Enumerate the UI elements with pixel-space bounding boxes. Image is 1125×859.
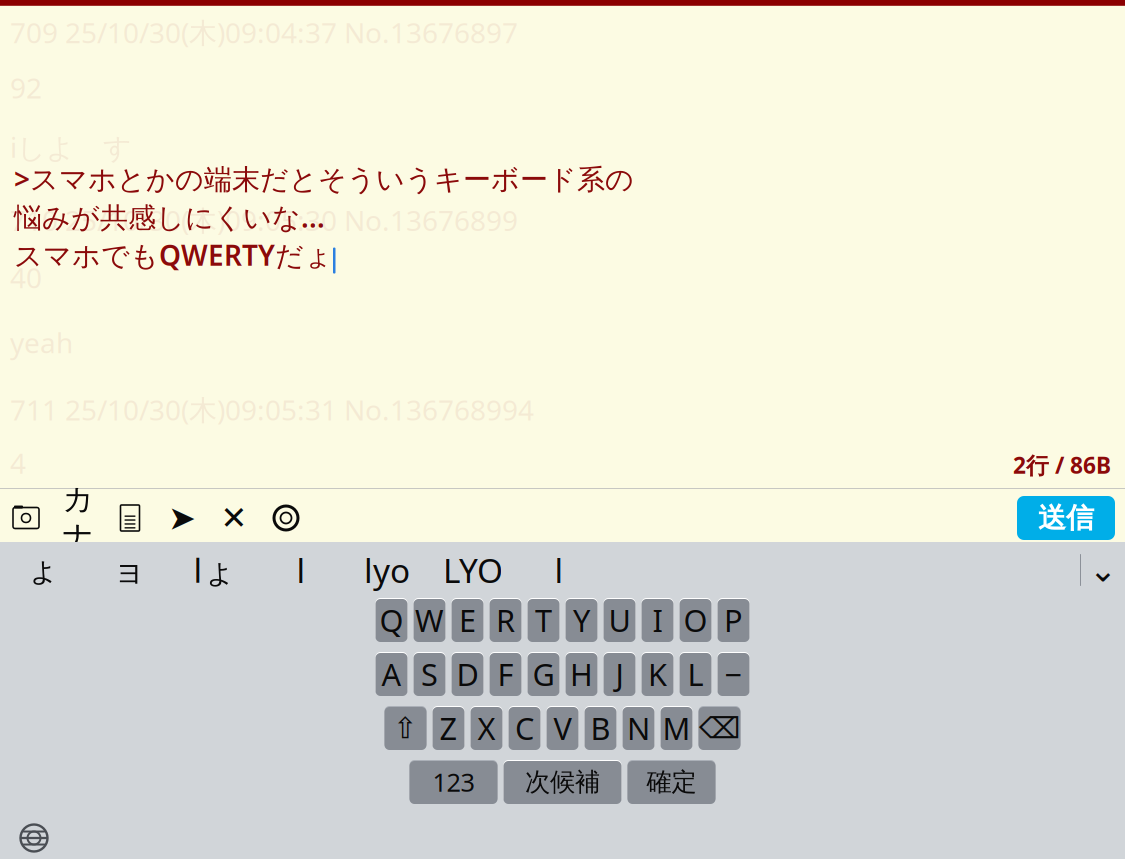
button[interactable]: ょ [0,544,86,596]
button[interactable]: J [603,652,635,696]
button[interactable]: M [660,706,692,750]
button[interactable]: Attach photo [0,493,52,543]
button[interactable]: E [451,598,483,642]
button[interactable]: Close [8,60,52,104]
button[interactable]: 123 [409,760,497,804]
staticText: Y [573,600,590,640]
staticText: 92 [10,69,42,106]
staticText: Q [379,600,403,640]
staticText: E [459,600,476,640]
button[interactable]: lyo [344,544,430,596]
button[interactable]: L [679,652,711,696]
staticText: T [535,600,552,640]
staticText: C [515,708,534,748]
staticText: ってる [10,550,97,584]
button[interactable]: l [258,544,344,596]
button[interactable]: S [413,652,445,696]
button[interactable]: X [470,706,502,750]
staticText: カナ [62,480,93,556]
staticText: L [687,654,703,694]
button[interactable]: U [603,598,635,642]
staticText: ⌫ [699,711,740,745]
staticText: ⌄ [1089,551,1117,589]
button[interactable]: I [641,598,673,642]
staticText: 4 [10,444,26,481]
staticText: H [570,654,593,694]
staticText: l [554,548,563,592]
staticText: iしよ す [10,128,132,165]
button[interactable]: F [489,652,521,696]
staticText: yeah [10,324,73,361]
button[interactable]: Y [565,598,597,642]
staticText: K [648,654,667,694]
staticText: lょ [193,548,236,592]
staticText: LYO [443,548,503,592]
button[interactable]: Quote [156,493,208,543]
staticText: B [590,708,610,748]
staticText: ョ [112,549,146,590]
staticText: 40 [10,259,42,296]
button[interactable]: R [489,598,521,642]
button[interactable]: Z [432,706,464,750]
button[interactable]: 送信 [1017,496,1115,540]
staticText: A [381,654,401,694]
staticText: P [724,600,743,640]
staticText: ✕ [220,500,247,536]
staticText: 711 25/10/30(木)09:05:31 No.136768994 [10,391,534,428]
staticText: 送信 [1038,501,1094,535]
button[interactable]: Template [104,493,156,543]
button[interactable]: Next keyboard [8,812,60,859]
staticText: ✕ [15,62,44,102]
button[interactable]: Hide suggestions [1081,544,1125,596]
staticText: 次候補 [525,766,600,797]
staticText: V [553,708,571,748]
staticText: N [627,708,650,748]
button[interactable]: G [527,652,559,696]
staticText: ょ [26,549,60,590]
staticText: O [683,600,707,640]
button[interactable]: ョ [86,544,172,596]
button[interactable]: N [622,706,654,750]
staticText: Z [439,708,457,748]
button[interactable]: O [679,598,711,642]
button[interactable]: C [508,706,540,750]
button[interactable]: B [584,706,616,750]
staticText: l [296,548,305,592]
button[interactable]: A [375,652,407,696]
button[interactable]: T [527,598,559,642]
button[interactable]: K [641,652,673,696]
button[interactable]: W [413,598,445,642]
button[interactable]: Katakana [52,493,104,543]
button[interactable]: ⇧ [384,706,426,750]
button[interactable]: D [451,652,483,696]
button[interactable]: lょ [172,544,258,596]
button[interactable]: Clear [208,493,260,543]
button[interactable]: 次候補 [503,760,621,804]
staticText: W [415,600,444,640]
staticText: R [496,600,515,640]
staticText: 確定 [646,766,696,797]
button[interactable]: P [717,598,749,642]
button[interactable]: LYO [430,544,516,596]
staticText: S [421,654,438,694]
staticText: I [652,600,662,640]
staticText: U [608,600,630,640]
button[interactable]: H [565,652,597,696]
button[interactable]: − [717,652,749,696]
staticText: スマホでもQWERTYだょ [14,236,333,274]
staticText: lyo [364,548,410,592]
button[interactable]: ⌫ [698,706,740,750]
button[interactable]: Settings [260,493,312,543]
staticText: M [662,708,690,748]
staticText: G [532,654,554,694]
button[interactable]: Q [375,598,407,642]
staticText: >スマホとかの端末だとそういうキーボード系の [14,160,634,197]
staticText: 悩みが共感しにくいな... [14,198,325,235]
staticText: − [724,654,742,694]
button[interactable]: V [546,706,578,750]
staticText: F [497,654,513,694]
button[interactable]: l [516,544,602,596]
button[interactable]: 確定 [627,760,715,804]
